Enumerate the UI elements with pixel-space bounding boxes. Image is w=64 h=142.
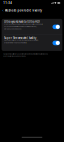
staticText: Nastavení kvality obrazu ovlivňuje spotř… [3,53,48,55]
button[interactable]: Zpět [2,9,4,12]
staticText: která jsou zde k dispozici. [4,28,21,30]
staticText: připojení k internetu nebo mobilní síti. [4,42,26,44]
staticText: Přehrává video v nejvyšší dostupné kvali… [4,23,43,25]
staticText: Možnosti pokročilé kvality [5,9,42,12]
button[interactable]: Super Streamování kvality [2,35,62,51]
staticText: výdrž baterie vašeho zařízení. [3,55,25,57]
staticText: Ultra vysoká kvalita (Ultra HD) [4,20,40,23]
staticText: 11:34 [3,1,12,5]
staticText: Super Streamování kvality [4,36,36,40]
button[interactable]: Ultra vysoká kvalita (Ultra HD) [2,19,62,35]
staticText: výrazně více mobilních dat než ostatní n… [4,26,36,27]
staticText: Zlepšuje kvalitu obrazu i při pomalém a … [4,39,38,41]
